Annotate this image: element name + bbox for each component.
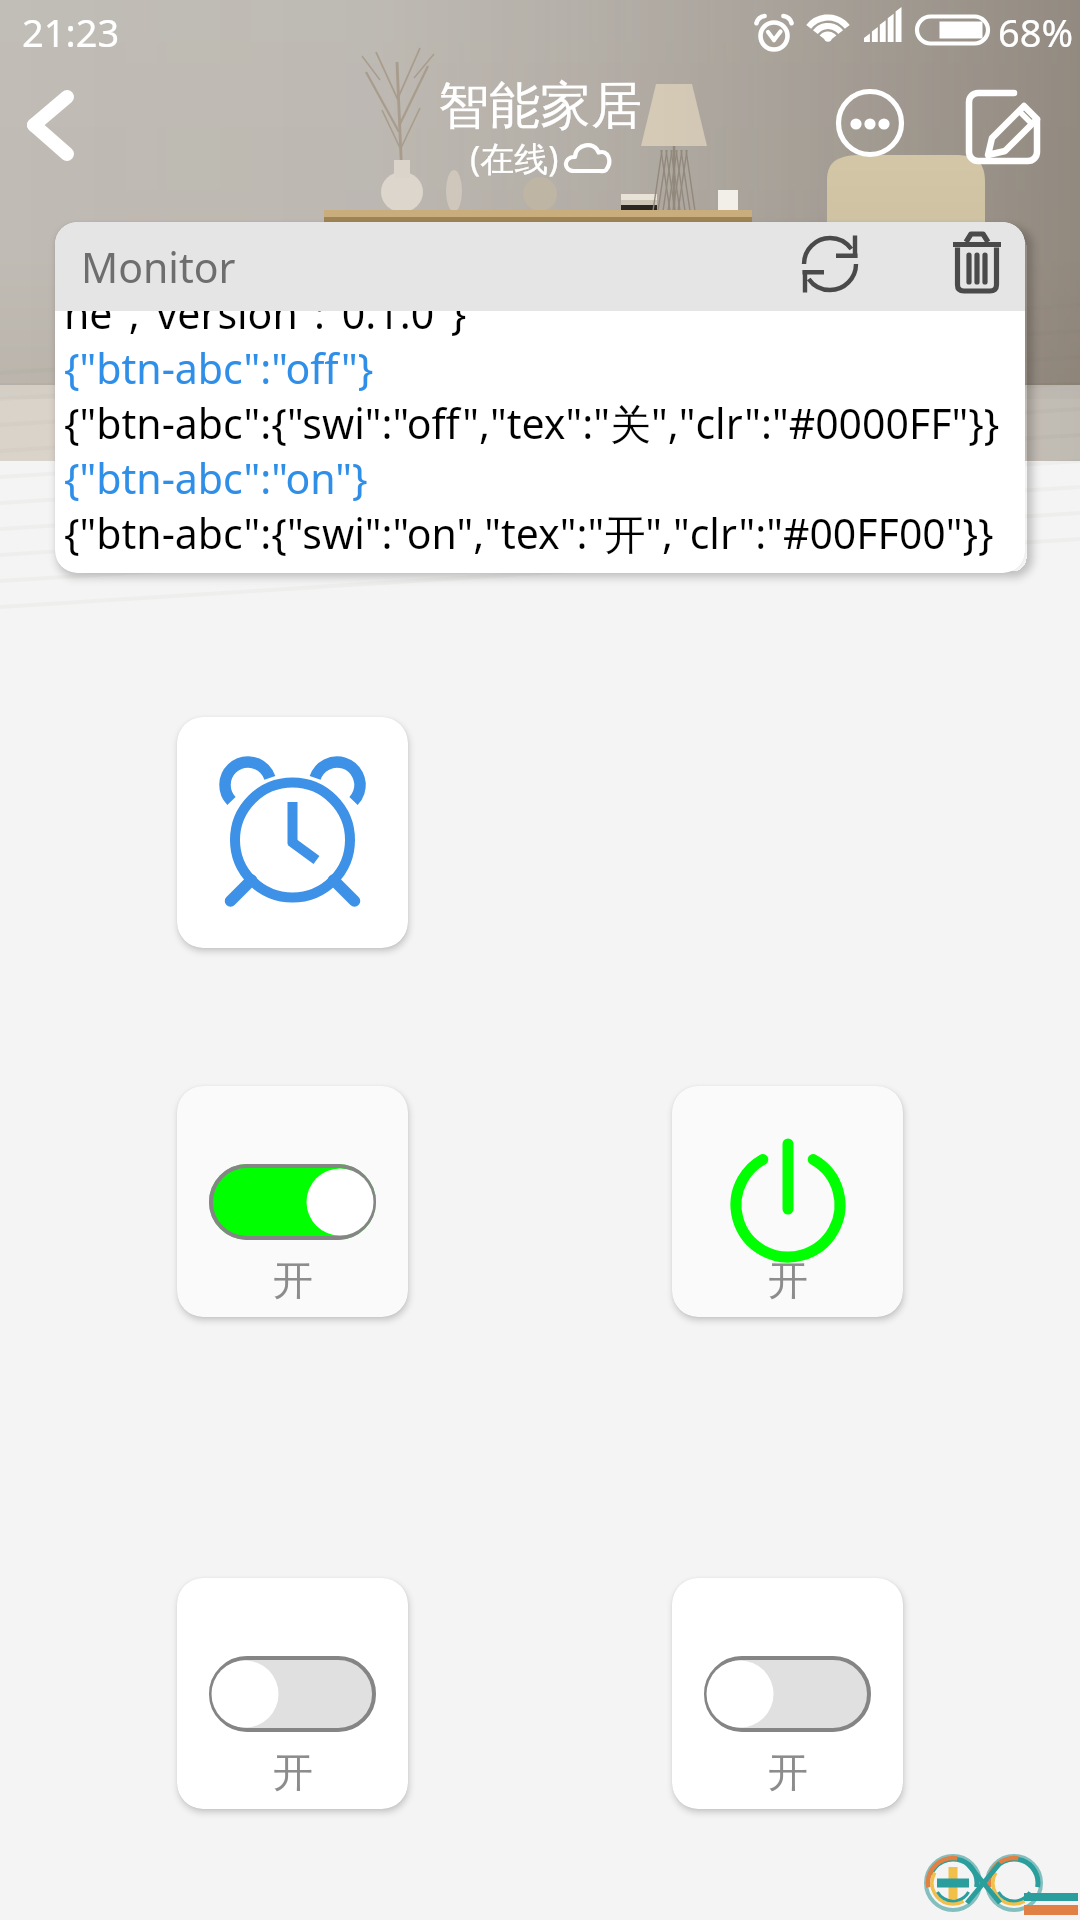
- staticText: 21:23: [22, 6, 120, 58]
- button[interactable]: 开: [672, 1086, 903, 1317]
- staticText: 开: [768, 1747, 808, 1797]
- staticText: 68%: [998, 6, 1074, 58]
- button[interactable]: Edit: [962, 84, 1044, 166]
- button[interactable]: 开: [177, 1086, 408, 1317]
- button[interactable]: 开: [672, 1578, 903, 1809]
- staticText: 开: [273, 1747, 313, 1797]
- staticText: 开: [273, 1255, 313, 1305]
- staticText: {"btn-abc":{"swi":"on","tex":"开","clr":"…: [64, 505, 994, 561]
- button[interactable]: More options: [832, 85, 908, 161]
- staticText: {"btn-abc":"off"}: [64, 340, 374, 395]
- button[interactable]: Alarm widget: [177, 717, 408, 948]
- staticText: 智能家居: [340, 74, 740, 138]
- staticText: ne","version":"0.1.0"}: [64, 285, 467, 340]
- staticText: (在线): [470, 135, 559, 181]
- button[interactable]: Refresh: [795, 229, 869, 303]
- button[interactable]: Back: [10, 72, 106, 168]
- button[interactable]: Delete: [945, 229, 1019, 303]
- staticText: 开: [768, 1255, 808, 1305]
- staticText: Monitor: [81, 239, 236, 295]
- button[interactable]: 开: [177, 1578, 408, 1809]
- staticText: {"btn-abc":"on"}: [64, 450, 368, 505]
- staticText: {"btn-abc":{"swi":"off","tex":"关","clr":…: [64, 395, 1000, 450]
